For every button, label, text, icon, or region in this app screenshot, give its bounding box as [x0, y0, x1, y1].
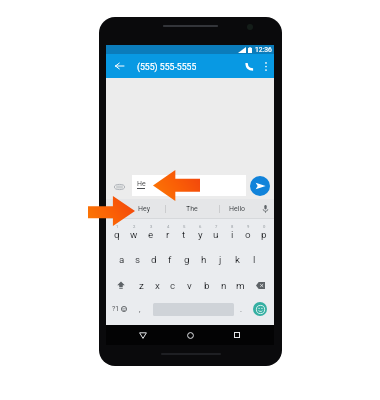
- staticText: 5: [183, 224, 186, 229]
- button[interactable]: 3: [142, 220, 159, 244]
- staticText: .: [240, 305, 242, 314]
- staticText: b: [204, 280, 210, 291]
- staticText: r: [166, 229, 170, 240]
- staticText: v: [187, 280, 192, 291]
- button[interactable]: j: [212, 247, 229, 271]
- staticText: k: [235, 254, 240, 265]
- button[interactable]: Voice input: [256, 199, 275, 218]
- staticText: 4: [167, 224, 170, 229]
- staticText: m: [236, 280, 245, 291]
- staticText: 1: [116, 224, 119, 229]
- staticText: d: [151, 254, 157, 265]
- button[interactable]: b: [198, 273, 215, 297]
- staticText: w: [130, 229, 138, 240]
- staticText: u: [213, 229, 219, 240]
- staticText: 12:36: [255, 46, 272, 54]
- staticText: q: [114, 229, 120, 240]
- staticText: 3: [150, 224, 153, 229]
- button[interactable]: Hello: [219, 199, 256, 218]
- button[interactable]: 4: [159, 220, 176, 244]
- button[interactable]: v: [181, 273, 198, 297]
- button[interactable]: 5: [176, 220, 192, 244]
- staticText: c: [170, 280, 176, 291]
- button[interactable]: c: [165, 273, 181, 297]
- staticText: l: [253, 254, 256, 265]
- button[interactable]: Attach: [109, 177, 129, 197]
- staticText: o: [245, 229, 251, 240]
- staticText: z: [139, 280, 144, 291]
- button[interactable]: Emoji: [251, 297, 269, 321]
- button[interactable]: a: [114, 247, 130, 271]
- staticText: j: [219, 254, 222, 265]
- button[interactable]: 7: [208, 220, 224, 244]
- button[interactable]: Shift: [112, 273, 129, 297]
- button[interactable]: f: [162, 247, 178, 271]
- button[interactable]: Back: [108, 55, 130, 77]
- button[interactable]: l: [246, 247, 263, 271]
- staticText: Hello: [229, 205, 246, 213]
- button[interactable]: g: [178, 247, 195, 271]
- button[interactable]: m: [232, 273, 249, 297]
- button[interactable]: 6: [192, 220, 208, 244]
- staticText: e: [148, 229, 154, 240]
- staticText: 9: [247, 224, 250, 229]
- button[interactable]: Symbols: [108, 297, 131, 321]
- button[interactable]: x: [149, 273, 165, 297]
- staticText: y: [198, 229, 203, 240]
- button[interactable]: k: [229, 247, 246, 271]
- staticText: p: [261, 229, 267, 240]
- button[interactable]: Back: [133, 325, 153, 345]
- staticText: The: [186, 205, 198, 213]
- button[interactable]: 1: [108, 220, 125, 244]
- button[interactable]: d: [146, 247, 162, 271]
- staticText: Hey: [138, 205, 150, 213]
- staticText: 7: [215, 224, 218, 229]
- staticText: He: [137, 180, 146, 188]
- staticText: t: [182, 229, 186, 240]
- staticText: ,: [139, 305, 141, 314]
- button[interactable]: Home: [180, 325, 200, 345]
- button[interactable]: He: [132, 175, 246, 196]
- staticText: s: [135, 254, 141, 265]
- button[interactable]: Backspace: [251, 273, 269, 297]
- button[interactable]: Hey: [123, 199, 165, 218]
- button[interactable]: Call: [239, 56, 259, 76]
- button[interactable]: 2: [125, 220, 142, 244]
- staticText: f: [168, 254, 172, 265]
- button[interactable]: .: [235, 297, 246, 321]
- staticText: i: [231, 229, 234, 240]
- staticText: n: [221, 280, 227, 291]
- button[interactable]: 8: [224, 220, 240, 244]
- button[interactable]: h: [195, 247, 212, 271]
- button[interactable]: 0: [256, 220, 272, 244]
- staticText: a: [119, 254, 125, 265]
- staticText: (555) 555-5555: [137, 62, 197, 72]
- staticText: ?1: [112, 305, 120, 313]
- button[interactable]: Send: [250, 176, 270, 196]
- staticText: 6: [199, 224, 202, 229]
- button[interactable]: The: [165, 199, 219, 218]
- staticText: 8: [231, 224, 234, 229]
- button[interactable]: 9: [240, 220, 256, 244]
- staticText: 0: [263, 224, 266, 229]
- button[interactable]: s: [130, 247, 146, 271]
- staticText: g: [184, 254, 190, 265]
- button[interactable]: More options: [257, 57, 275, 75]
- staticText: h: [201, 254, 207, 265]
- button[interactable]: n: [215, 273, 232, 297]
- staticText: x: [155, 280, 160, 291]
- button[interactable]: Recents: [227, 325, 247, 345]
- button[interactable]: z: [133, 273, 149, 297]
- staticText: 2: [133, 224, 136, 229]
- button[interactable]: ,: [134, 297, 145, 321]
